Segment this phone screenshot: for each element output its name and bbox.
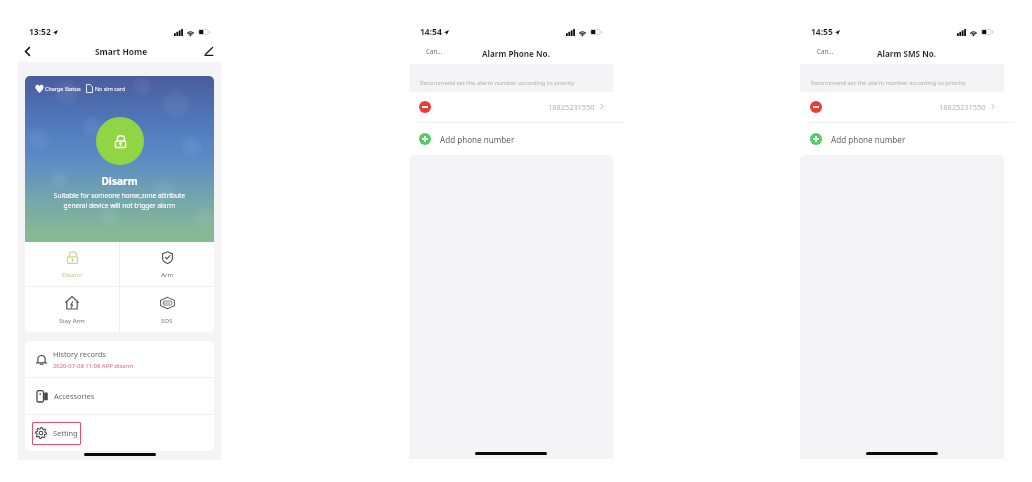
button[interactable]: Arm: [120, 242, 214, 286]
button[interactable]: Remove: [419, 101, 431, 113]
staticText: Alarm Phone No.: [482, 48, 550, 59]
staticText: Alarm SMS No.: [877, 48, 937, 59]
button[interactable]: Remove: [409, 92, 613, 123]
staticText: Can...: [426, 47, 443, 55]
staticText: Accessories: [54, 391, 95, 401]
button[interactable]: Disarm: [96, 117, 144, 165]
button[interactable]: Back: [20, 44, 34, 58]
button[interactable]: Can...: [815, 45, 836, 57]
staticText: Recommend set the alarm number according…: [811, 79, 966, 87]
staticText: Add phone number: [831, 134, 906, 145]
button[interactable]: Stay Arm: [25, 287, 119, 332]
button[interactable]: Setting: [25, 415, 214, 451]
button[interactable]: SOS: [120, 287, 214, 332]
staticText: 14:54: [420, 26, 442, 38]
staticText: Arm: [161, 270, 174, 278]
staticText: Setting: [53, 428, 78, 438]
staticText: 13:52: [29, 26, 51, 38]
staticText: 18825231550: [939, 102, 986, 112]
button[interactable]: Accessories: [25, 378, 214, 414]
button[interactable]: Add phone number: [409, 123, 613, 155]
staticText: Recommend set the alarm number according…: [420, 79, 575, 87]
button[interactable]: Remove: [810, 101, 822, 113]
staticText: 18825231550: [548, 102, 595, 112]
staticText: Can...: [817, 47, 834, 55]
staticText: Disarm: [25, 174, 214, 188]
staticText: 14:55: [811, 26, 833, 38]
button[interactable]: Edit: [200, 43, 216, 59]
button[interactable]: Disarm: [25, 242, 119, 286]
button[interactable]: History records: [25, 341, 214, 377]
staticText: Stay Arm: [59, 316, 85, 324]
staticText: No sim card: [95, 85, 126, 92]
staticText: History records: [53, 349, 106, 359]
staticText: SOS: [161, 316, 173, 324]
button[interactable]: Can...: [424, 45, 445, 57]
staticText: Smart Home: [95, 46, 148, 57]
button[interactable]: Add phone number: [800, 123, 1004, 155]
staticText: Disarm: [62, 270, 83, 278]
staticText: Suitable for someone home,zone attribute…: [29, 191, 210, 209]
staticText: 2020-07-08 11:08 APP disarm: [53, 362, 134, 370]
button[interactable]: Remove: [800, 92, 1004, 123]
staticText: Charge Status: [45, 85, 81, 92]
staticText: Add phone number: [440, 134, 515, 145]
